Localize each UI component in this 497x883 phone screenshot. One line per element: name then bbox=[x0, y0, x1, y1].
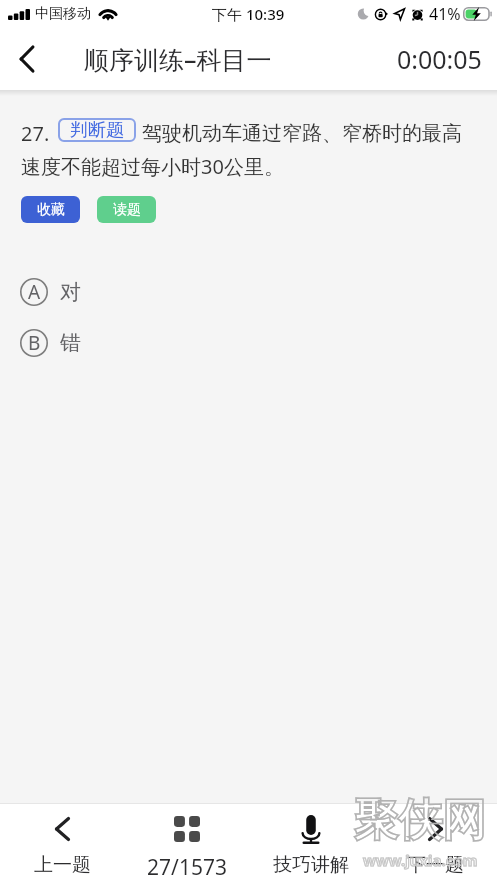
staticText: 收藏 bbox=[37, 201, 65, 219]
button[interactable]: B bbox=[0, 329, 497, 357]
button[interactable]: A bbox=[0, 278, 497, 306]
staticText: 读题 bbox=[113, 201, 141, 219]
button[interactable]: 技巧讲解 bbox=[249, 804, 373, 883]
staticText: 27. bbox=[21, 120, 50, 146]
staticText: 下一题 bbox=[407, 853, 464, 877]
staticText: 判断题 bbox=[70, 119, 124, 142]
staticText: 27/1573 bbox=[147, 853, 227, 877]
staticText: 驾驶机动车通过窄路、窄桥时的最高 bbox=[142, 121, 462, 146]
staticText: 对 bbox=[60, 279, 81, 305]
staticText: 中国移动 bbox=[35, 5, 91, 23]
staticText: 聚侠网 bbox=[354, 793, 486, 848]
button[interactable]: 27/1573 bbox=[125, 804, 249, 883]
staticText: 顺序训练–科目一 bbox=[84, 42, 272, 76]
staticText: 41% bbox=[429, 3, 461, 25]
button[interactable]: 读题 bbox=[97, 196, 156, 223]
button[interactable]: 上一题 bbox=[0, 804, 125, 883]
staticText: www.juxia.com bbox=[363, 850, 478, 870]
staticText: 错 bbox=[60, 330, 81, 356]
staticText: B bbox=[28, 330, 41, 356]
staticText: 技巧讲解 bbox=[273, 853, 349, 877]
staticText: A bbox=[28, 279, 41, 305]
button[interactable]: 收藏 bbox=[21, 196, 80, 223]
button[interactable]: 返回 bbox=[0, 28, 54, 90]
staticText: 速度不能超过每小时30公里。 bbox=[21, 153, 284, 180]
staticText: 0:00:05 bbox=[397, 42, 482, 76]
button[interactable]: 下一题 bbox=[373, 804, 497, 883]
staticText: 上一题 bbox=[34, 853, 91, 877]
staticText: 下午 10:39 bbox=[212, 4, 285, 24]
